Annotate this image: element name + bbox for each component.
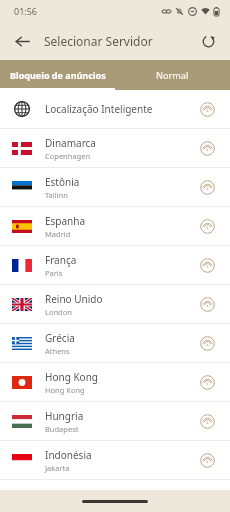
button[interactable]: Refresh	[192, 25, 224, 57]
button[interactable]: Dinamarca	[0, 129, 230, 168]
staticText: Athens	[45, 346, 70, 356]
button[interactable]: Estônia	[0, 168, 230, 207]
staticText: Paris	[45, 268, 63, 278]
button[interactable]: Espanha	[0, 207, 230, 246]
staticText: 01:56	[14, 5, 38, 17]
button[interactable]: Reino Unido	[0, 285, 230, 324]
staticText: Estônia	[45, 175, 80, 189]
button[interactable]: Indonésia	[0, 441, 230, 480]
staticText: Normal	[156, 69, 189, 81]
button[interactable]: Hong Kong	[0, 363, 230, 402]
button[interactable]: Signal Espanha	[194, 213, 220, 239]
button[interactable]: Signal Hong Kong	[194, 369, 220, 395]
button[interactable]: França	[0, 246, 230, 285]
staticText: London	[45, 307, 72, 317]
staticText: Selecionar Servidor	[44, 33, 192, 49]
button[interactable]: Signal Grécia	[194, 330, 220, 356]
staticText: Madrid	[45, 229, 71, 239]
button[interactable]: Signal França	[194, 252, 220, 278]
button[interactable]: Hungria	[0, 402, 230, 441]
staticText: Localização Inteligente	[45, 102, 153, 116]
staticText: Reino Unido	[45, 292, 103, 306]
button[interactable]: Signal Indonésia	[194, 447, 220, 473]
staticText: França	[45, 253, 77, 267]
button[interactable]: Signal Localização Inteligente	[194, 96, 220, 122]
staticText: Budapest	[45, 424, 79, 434]
button[interactable]: Bloqueio de anúncios	[0, 60, 115, 90]
button[interactable]: Localização Inteligente	[0, 90, 230, 129]
button[interactable]: Normal	[115, 60, 230, 90]
staticText: Hong Kong	[45, 370, 98, 384]
button[interactable]: Signal Dinamarca	[194, 135, 220, 161]
staticText: Hungria	[45, 409, 84, 423]
staticText: Grécia	[45, 331, 75, 345]
button[interactable]: Signal Reino Unido	[194, 291, 220, 317]
staticText: Copenhagen	[45, 151, 91, 161]
button[interactable]: Grécia	[0, 324, 230, 363]
staticText: Indonésia	[45, 448, 92, 462]
staticText: Tallinn	[45, 190, 68, 200]
staticText: Jakarta	[45, 463, 70, 473]
button[interactable]: Signal Estônia	[194, 174, 220, 200]
staticText: Bloqueio de anúncios	[10, 69, 106, 81]
staticText: Hong Kong	[45, 385, 85, 395]
button[interactable]: Signal Hungria	[194, 408, 220, 434]
button[interactable]: Back	[6, 25, 38, 57]
staticText: Dinamarca	[45, 136, 96, 150]
staticText: Espanha	[45, 214, 86, 228]
